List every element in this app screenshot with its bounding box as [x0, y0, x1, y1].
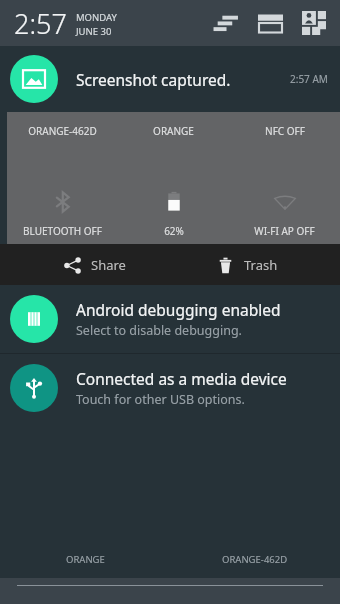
staticText: 62% — [164, 224, 184, 238]
button[interactable]: ORANGE — [118, 122, 229, 140]
staticText: MONDAY — [76, 11, 117, 24]
staticText: JUNE 30 — [76, 25, 112, 38]
staticText: WI-FI AP OFF — [254, 224, 315, 238]
staticText: Select to disable debugging. — [76, 322, 242, 339]
button[interactable]: ORANGE-462D — [7, 122, 118, 140]
button[interactable]: Split screen — [252, 5, 288, 41]
staticText: ORANGE-462D — [28, 124, 97, 138]
staticText: BLUETOOTH OFF — [23, 224, 102, 238]
button[interactable]: 62% — [118, 185, 229, 240]
staticText: 2:57 AM — [290, 72, 328, 86]
button[interactable]: Android debugging enabled — [0, 285, 340, 353]
button[interactable]: Contacts grid — [296, 5, 332, 41]
staticText: NFC OFF — [265, 124, 305, 138]
button[interactable]: Trash — [209, 249, 286, 281]
button[interactable]: Screenshot captured. — [0, 46, 340, 112]
button[interactable]: BLUETOOTH OFF — [7, 185, 118, 240]
staticText: ORANGE — [153, 124, 194, 138]
staticText: Share — [91, 256, 126, 274]
staticText: Touch for other USB options. — [76, 391, 245, 408]
button[interactable]: Sort — [208, 5, 244, 41]
button[interactable]: ORANGE — [0, 540, 170, 578]
staticText: ORANGE-462D — [222, 553, 288, 566]
button[interactable]: WI-FI AP OFF — [229, 185, 340, 240]
staticText: 2:57 — [14, 5, 67, 42]
button[interactable]: Share — [56, 249, 134, 281]
button[interactable]: NFC OFF — [229, 122, 340, 140]
button[interactable]: ORANGE-462D — [170, 540, 340, 578]
staticText: Trash — [244, 256, 278, 274]
button[interactable]: Connected as a media device — [0, 354, 340, 422]
staticText: Screenshot captured. — [76, 69, 231, 90]
staticText: Android debugging enabled — [76, 299, 281, 320]
staticText: ORANGE — [66, 553, 105, 566]
staticText: Connected as a media device — [76, 368, 287, 389]
